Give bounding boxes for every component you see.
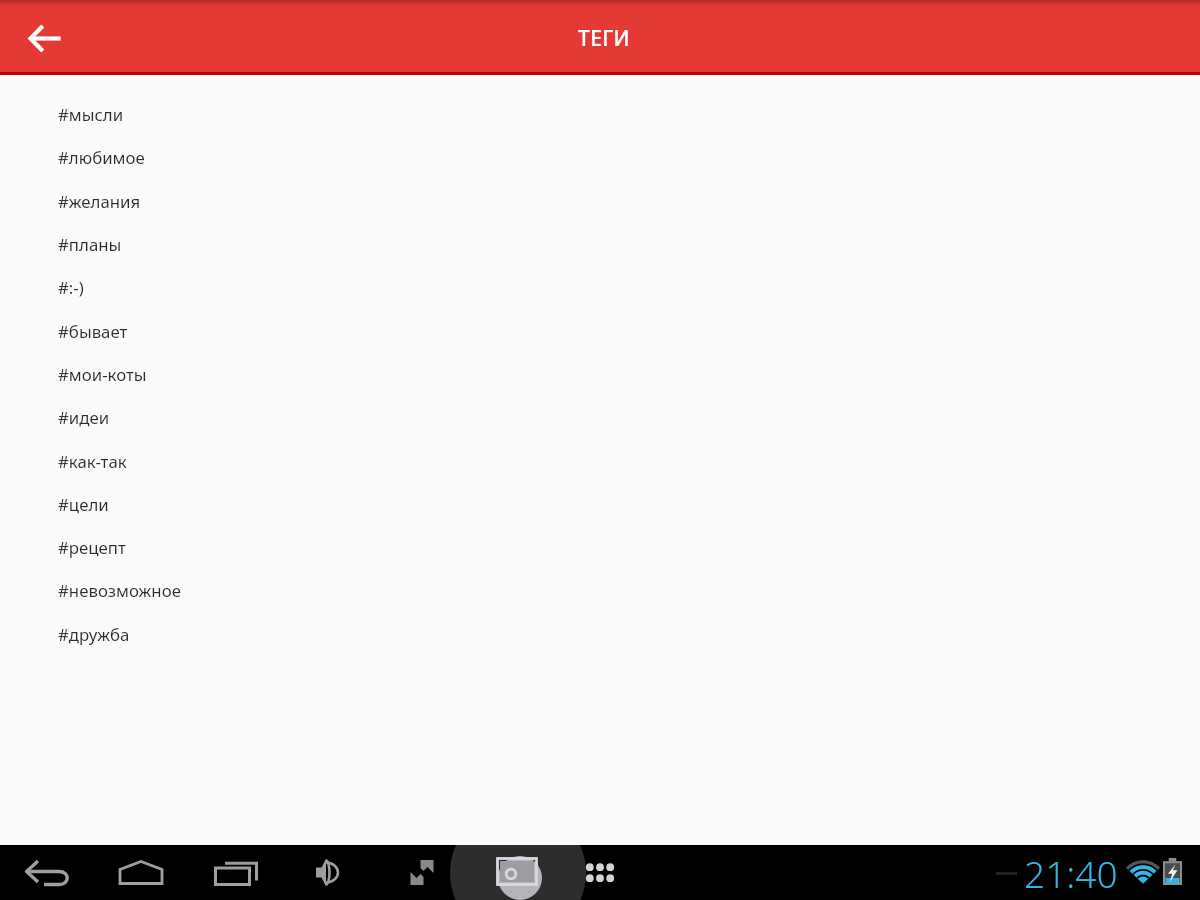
- staticText: 21:40: [1024, 848, 1118, 898]
- staticText: #рецепт: [58, 536, 126, 559]
- staticText: #любимое: [58, 146, 145, 169]
- staticText: #дружба: [58, 623, 130, 646]
- button[interactable]: #идеи: [0, 396, 1200, 439]
- staticText: #идеи: [58, 406, 110, 429]
- staticText: #как-так: [58, 450, 127, 473]
- button[interactable]: Back: [15, 8, 76, 69]
- staticText: ТЕГИ: [4, 24, 1200, 53]
- button[interactable]: #дружба: [0, 613, 1200, 656]
- button[interactable]: #как-так: [0, 440, 1200, 483]
- staticText: #планы: [58, 233, 122, 256]
- button[interactable]: #:-): [0, 266, 1200, 309]
- staticText: #цели: [58, 493, 109, 516]
- staticText: #мои-коты: [58, 363, 147, 386]
- button[interactable]: Screenshot: [490, 845, 544, 900]
- button[interactable]: Home: [114, 845, 168, 900]
- button[interactable]: Fullscreen: [395, 845, 449, 900]
- button[interactable]: #любимое: [0, 136, 1200, 179]
- button[interactable]: #невозможное: [0, 569, 1200, 612]
- button[interactable]: Back: [20, 845, 74, 900]
- staticText: #мысли: [58, 103, 124, 126]
- button[interactable]: #мысли: [0, 93, 1200, 136]
- staticText: #невозможное: [58, 579, 181, 602]
- button[interactable]: #мои-коты: [0, 353, 1200, 396]
- staticText: #бывает: [58, 320, 128, 343]
- button[interactable]: #желания: [0, 180, 1200, 223]
- button[interactable]: #бывает: [0, 310, 1200, 353]
- staticText: #:-): [58, 276, 84, 299]
- button[interactable]: All apps: [573, 845, 627, 900]
- button[interactable]: #цели: [0, 483, 1200, 526]
- button[interactable]: Volume: [302, 845, 356, 900]
- button[interactable]: Recent apps: [209, 845, 263, 900]
- button[interactable]: #рецепт: [0, 526, 1200, 569]
- button[interactable]: #планы: [0, 223, 1200, 266]
- staticText: #желания: [58, 190, 141, 213]
